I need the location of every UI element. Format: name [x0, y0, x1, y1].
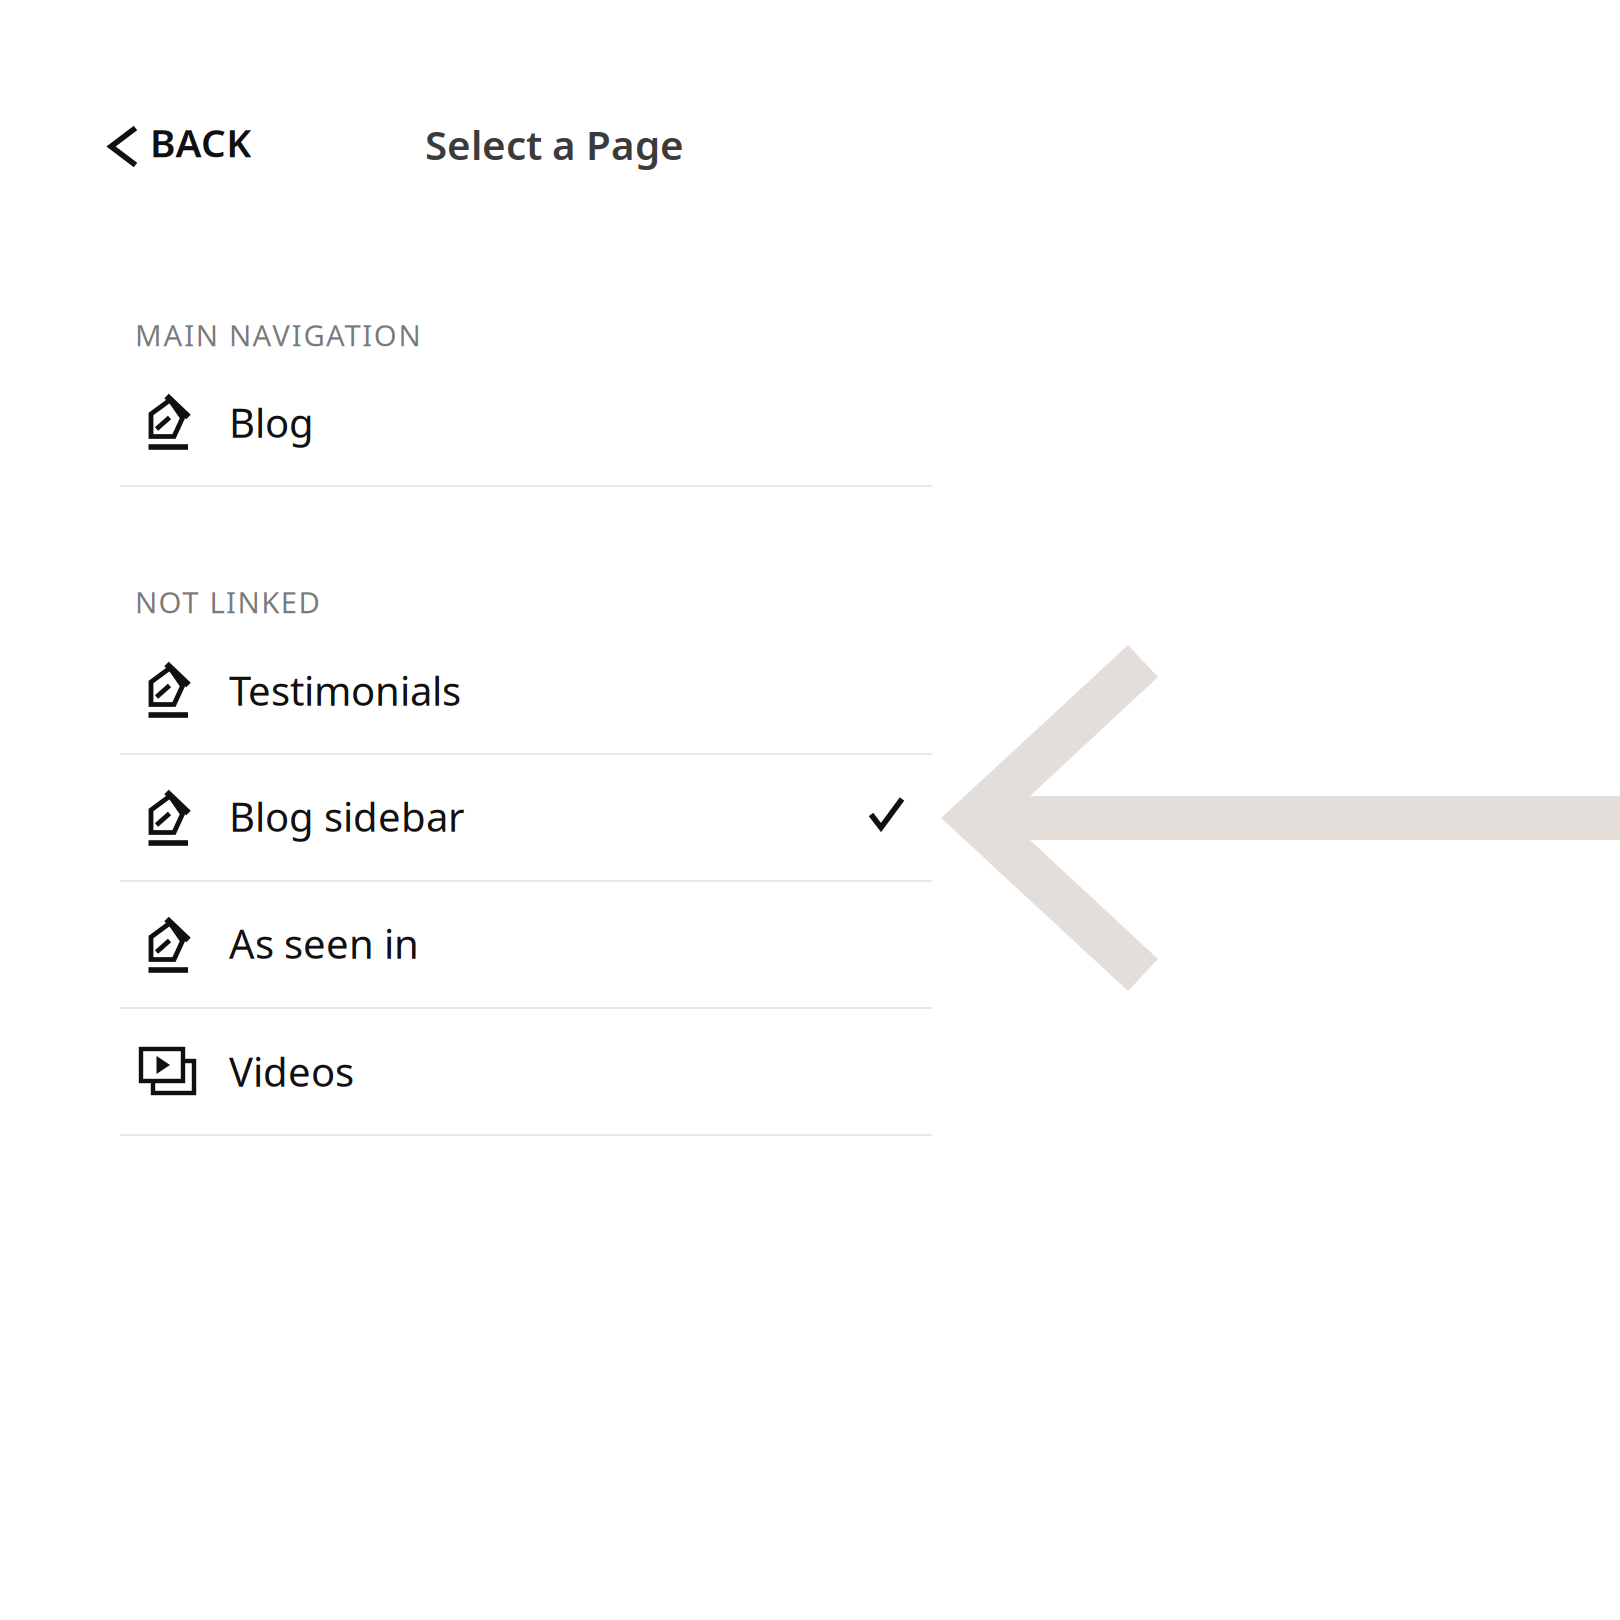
button[interactable]: BACK: [104, 120, 364, 180]
button[interactable]: Videos: [120, 1009, 932, 1136]
button[interactable]: Blog sidebar: [120, 755, 932, 882]
staticText: Blog: [229, 395, 314, 449]
staticText: MAIN NAVIGATION: [135, 315, 420, 355]
button[interactable]: As seen in: [120, 882, 932, 1009]
button[interactable]: Testimonials: [120, 627, 932, 755]
staticText: Select a Page: [425, 117, 684, 172]
staticText: Videos: [229, 1044, 354, 1098]
staticText: As seen in: [229, 916, 419, 970]
staticText: NOT LINKED: [135, 582, 319, 622]
staticText: BACK: [150, 116, 251, 169]
button[interactable]: Blog: [120, 359, 932, 487]
staticText: Testimonials: [229, 663, 461, 717]
staticText: Blog sidebar: [229, 789, 465, 843]
